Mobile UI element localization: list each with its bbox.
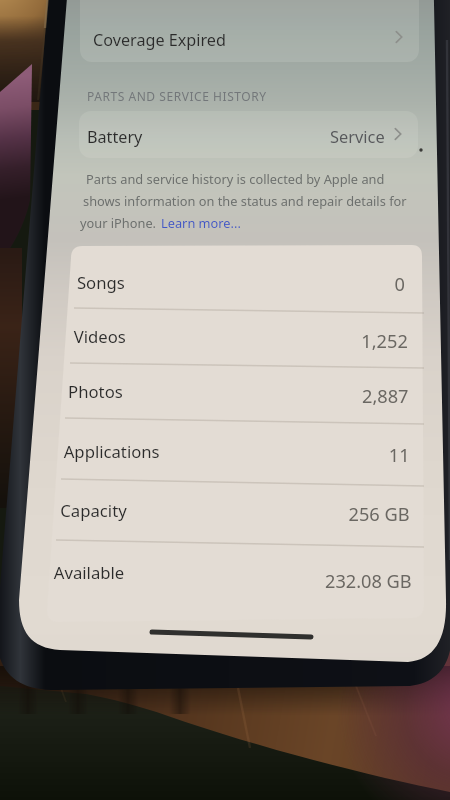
button[interactable]	[54, 365, 419, 421]
button[interactable]: Learn more about parts and service histo…	[154, 212, 232, 232]
button[interactable]	[50, 483, 415, 544]
button[interactable]	[81, 111, 418, 158]
button[interactable]	[82, 12, 419, 61]
button[interactable]	[48, 544, 413, 612]
button[interactable]	[56, 310, 421, 365]
button[interactable]	[58, 257, 423, 310]
button[interactable]	[52, 421, 417, 483]
